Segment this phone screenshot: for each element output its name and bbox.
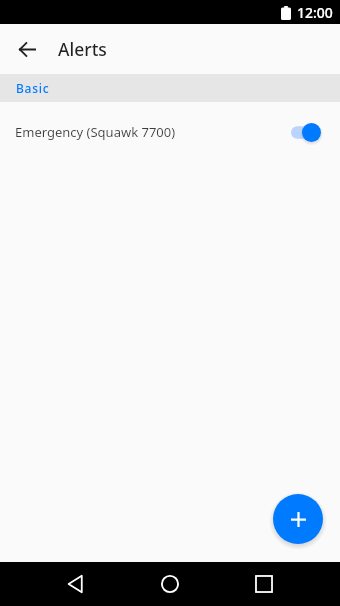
button[interactable]: Add xyxy=(273,494,323,544)
button[interactable]: Recent apps xyxy=(242,562,286,606)
button[interactable]: Emergency (Squawk 7700) xyxy=(0,102,340,162)
button[interactable]: Back xyxy=(54,562,98,606)
button[interactable]: Navigate up xyxy=(7,29,47,69)
staticText: 12:00 xyxy=(297,3,333,22)
staticText: Emergency (Squawk 7700) xyxy=(15,123,176,141)
staticText: Basic xyxy=(16,80,50,96)
button[interactable]: Toggle Emergency xyxy=(291,123,321,142)
button[interactable]: Home xyxy=(148,562,192,606)
staticText: Alerts xyxy=(58,37,107,61)
